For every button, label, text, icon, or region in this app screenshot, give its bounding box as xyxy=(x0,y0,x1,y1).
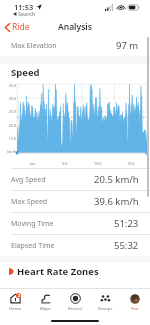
button[interactable]: Groups xyxy=(90,289,120,316)
button[interactable]: Home xyxy=(0,289,30,316)
staticText: Maps xyxy=(40,306,51,312)
staticText: Groups xyxy=(98,306,113,312)
staticText: Speed xyxy=(11,66,40,79)
staticText: Ride xyxy=(12,21,30,33)
staticText: km/h xyxy=(7,149,16,154)
staticText: Moving Time xyxy=(11,219,54,229)
staticText: Max Elevation xyxy=(11,41,57,51)
staticText: 97 m xyxy=(116,39,139,52)
button[interactable]: You xyxy=(120,289,150,316)
staticText: Avg Speed xyxy=(11,175,46,185)
staticText: Elapsed Time xyxy=(11,241,55,251)
button[interactable]: Avg Speed xyxy=(0,169,150,190)
staticText: Home xyxy=(9,306,21,312)
staticText: 10.0 xyxy=(94,161,102,166)
staticText: 20.5 km/h xyxy=(94,173,139,186)
button[interactable]: Elapsed Time xyxy=(0,235,150,256)
button[interactable]: Max Elevation xyxy=(0,35,150,56)
button[interactable]: Maps xyxy=(30,289,60,316)
staticText: 2 xyxy=(18,293,20,298)
staticText: 39.6 km/h xyxy=(94,195,139,208)
staticText: Search xyxy=(18,10,36,17)
staticText: 15.0 xyxy=(127,161,135,166)
staticText: Record xyxy=(68,306,82,312)
staticText: Max Speed xyxy=(11,197,48,207)
staticText: 30.0 xyxy=(8,96,16,101)
button[interactable]: Heart Rate Zones xyxy=(0,263,150,280)
button[interactable]: Search xyxy=(13,10,36,17)
staticText: 55:32 xyxy=(114,239,139,252)
staticText: 35.0 xyxy=(8,83,16,88)
staticText: Heart Rate Zones xyxy=(17,265,99,278)
staticText: Analysis xyxy=(58,21,92,33)
button[interactable]: Ride xyxy=(5,21,30,33)
staticText: 20.0 xyxy=(8,123,16,128)
staticText: km xyxy=(30,161,36,166)
button[interactable]: Moving Time xyxy=(0,213,150,234)
button[interactable]: Max Speed xyxy=(0,191,150,212)
staticText: 5.0 xyxy=(62,161,68,166)
staticText: 51:23 xyxy=(114,217,139,230)
staticText: You xyxy=(131,306,139,312)
staticText: 15.0 xyxy=(8,136,16,141)
staticText: 25.0 xyxy=(8,109,16,114)
staticText: 11:53 xyxy=(14,2,34,12)
button[interactable]: Record xyxy=(60,289,90,316)
